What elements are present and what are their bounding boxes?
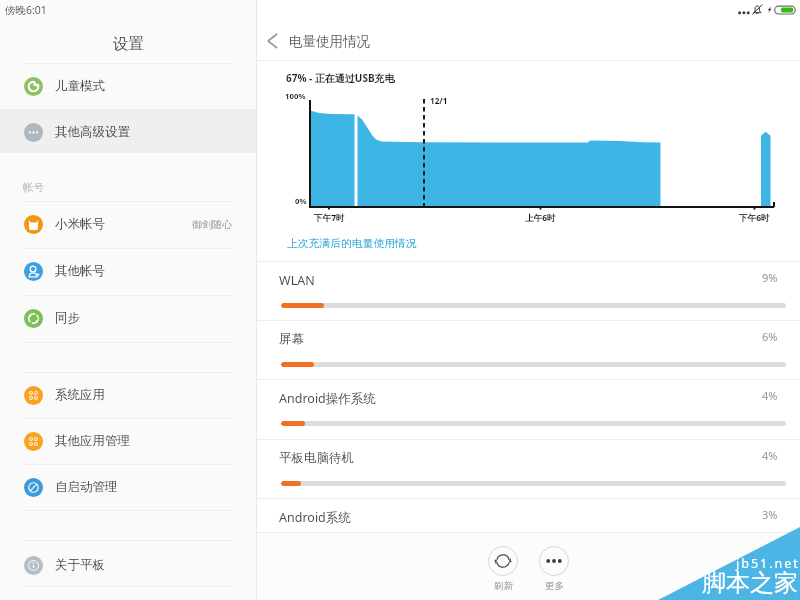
button[interactable]: Android系统: [257, 498, 800, 557]
staticText: 下午7时: [314, 212, 345, 224]
button[interactable]: 关于平板: [0, 542, 256, 588]
staticText: jb51.net: [736, 555, 800, 572]
button[interactable]: WLAN: [257, 261, 800, 320]
staticText: 平板电脑待机: [279, 450, 354, 466]
staticText: 刷新: [494, 580, 513, 592]
staticText: 小米帐号: [55, 216, 105, 232]
staticText: 100%: [285, 91, 306, 102]
staticText: 自启动管理: [55, 479, 118, 495]
staticText: 12/1: [430, 95, 448, 106]
staticText: Android系统: [279, 509, 351, 526]
staticText: 0%: [295, 196, 307, 207]
button[interactable]: 其他应用管理: [0, 418, 256, 464]
button[interactable]: 自启动管理: [0, 464, 256, 510]
button[interactable]: 其他帐号: [0, 248, 256, 294]
button[interactable]: Back: [258, 26, 288, 56]
button[interactable]: 同步: [0, 295, 256, 341]
staticText: 4%: [762, 448, 778, 463]
button[interactable]: 上次充满后的电量使用情况: [287, 237, 417, 251]
button[interactable]: 其他高级设置: [0, 109, 256, 155]
button[interactable]: 刷新: [477, 546, 529, 592]
staticText: 电量使用情况: [289, 33, 370, 50]
button[interactable]: 系统应用: [0, 372, 256, 418]
staticText: 屏幕: [279, 331, 304, 347]
staticText: 下午6时: [739, 212, 770, 224]
staticText: 其他帐号: [55, 263, 105, 279]
staticText: 上午6时: [525, 212, 556, 224]
button[interactable]: 平板电脑待机: [257, 439, 800, 498]
button[interactable]: 屏幕: [257, 320, 800, 379]
staticText: WLAN: [279, 272, 315, 289]
button[interactable]: 小米帐号: [0, 201, 256, 247]
staticText: 帐号: [23, 181, 44, 194]
staticText: 同步: [55, 310, 80, 326]
staticText: 系统应用: [55, 387, 105, 403]
staticText: 御剑随心: [192, 218, 232, 231]
staticText: 傍晚6:01: [5, 3, 47, 17]
staticText: 脚本之家: [702, 568, 798, 598]
button[interactable]: Android操作系统: [257, 379, 800, 438]
button[interactable]: 更多: [528, 546, 580, 592]
staticText: 更多: [545, 580, 564, 592]
staticText: 设置: [113, 34, 144, 54]
staticText: 9%: [762, 270, 778, 285]
staticText: 儿童模式: [55, 78, 105, 94]
staticText: Android操作系统: [279, 390, 376, 407]
button[interactable]: 儿童模式: [0, 63, 256, 109]
staticText: 67% - 正在通过USB充电: [286, 71, 395, 85]
staticText: 其他高级设置: [55, 124, 130, 140]
staticText: 6%: [762, 329, 778, 344]
staticText: 4%: [762, 388, 778, 403]
staticText: 关于平板: [55, 557, 105, 573]
staticText: 其他应用管理: [55, 433, 130, 449]
staticText: 3%: [762, 507, 778, 522]
